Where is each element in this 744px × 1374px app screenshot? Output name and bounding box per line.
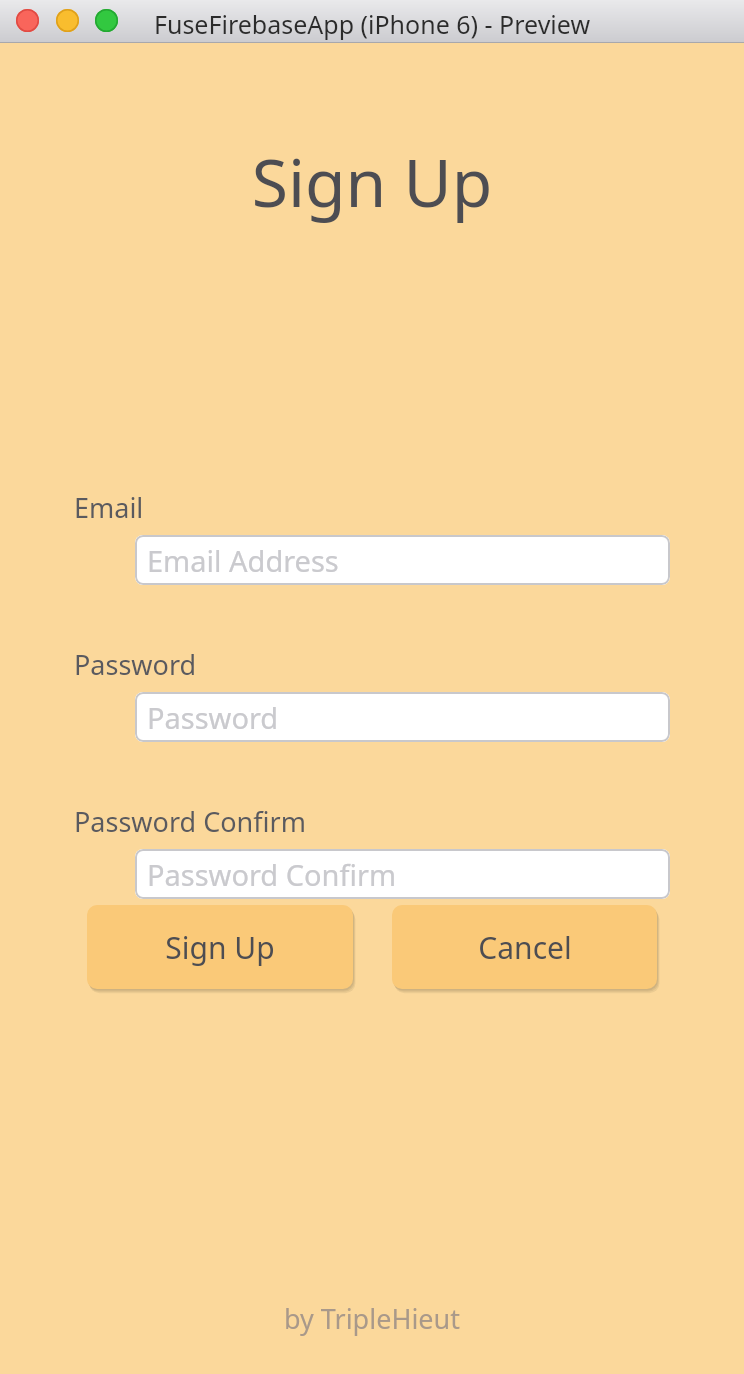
staticText: by TripleHieut — [0, 1300, 744, 1337]
staticText: Password Confirm — [147, 855, 397, 894]
button[interactable]: Password — [135, 692, 670, 742]
staticText: Password — [147, 698, 279, 737]
button[interactable]: Sign Up — [87, 905, 353, 989]
staticText: Email Address — [147, 541, 339, 580]
button[interactable]: Window control — [56, 9, 79, 32]
staticText: Sign Up — [165, 927, 275, 968]
staticText: Sign Up — [0, 136, 744, 226]
button[interactable]: Window control — [16, 9, 39, 32]
button[interactable]: Password Confirm — [135, 849, 670, 899]
button[interactable]: Email Address — [135, 535, 670, 585]
button[interactable]: Cancel — [392, 905, 657, 989]
staticText: Cancel — [478, 927, 572, 968]
staticText: Password — [74, 646, 197, 683]
button[interactable]: Window control — [95, 9, 118, 32]
staticText: FuseFirebaseApp (iPhone 6) - Preview — [0, 7, 744, 41]
staticText: Password Confirm — [74, 803, 306, 840]
staticText: Email — [74, 489, 144, 526]
